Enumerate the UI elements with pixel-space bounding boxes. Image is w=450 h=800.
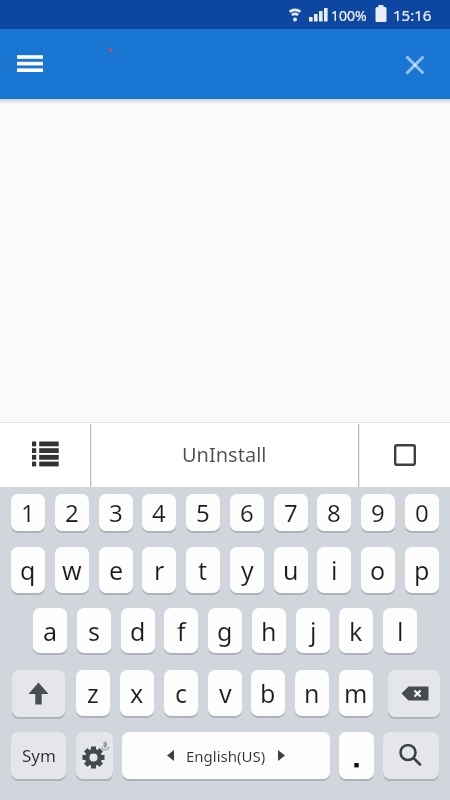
staticText: 7: [284, 496, 298, 529]
staticText: f: [177, 614, 186, 648]
staticText: 100%: [331, 6, 367, 25]
button[interactable]: [383, 732, 439, 779]
button[interactable]: 8: [317, 494, 351, 531]
staticText: 2: [65, 496, 79, 529]
button[interactable]: English(US): [122, 732, 330, 779]
button[interactable]: s: [77, 608, 111, 653]
staticText: e: [109, 553, 124, 587]
staticText: 4: [152, 496, 166, 529]
button[interactable]: m: [339, 670, 373, 716]
button[interactable]: 6: [230, 494, 264, 531]
staticText: 1: [21, 496, 35, 529]
button[interactable]: v: [208, 670, 242, 716]
button[interactable]: b: [251, 670, 285, 716]
button[interactable]: UnInstall: [91, 422, 358, 487]
button[interactable]: [339, 732, 374, 779]
button[interactable]: a: [33, 608, 67, 653]
staticText: h: [261, 614, 277, 648]
staticText: u: [283, 553, 299, 587]
button[interactable]: 9: [361, 494, 395, 531]
staticText: z: [87, 676, 99, 710]
staticText: j: [310, 614, 317, 648]
staticText: 3: [109, 496, 123, 529]
button[interactable]: r: [142, 547, 176, 593]
button[interactable]: u: [274, 547, 308, 593]
button[interactable]: y: [230, 547, 264, 593]
staticText: English(US): [186, 746, 266, 766]
staticText: y: [241, 553, 254, 587]
button[interactable]: o: [361, 547, 395, 593]
staticText: 15:16: [393, 5, 432, 25]
staticText: d: [130, 614, 146, 648]
button[interactable]: n: [295, 670, 329, 716]
staticText: UnInstall: [182, 441, 267, 468]
staticText: b: [260, 676, 276, 710]
staticText: k: [349, 614, 363, 648]
staticText: c: [175, 676, 188, 710]
button[interactable]: p: [405, 547, 439, 593]
staticText: w: [62, 553, 82, 587]
button[interactable]: t: [186, 547, 220, 593]
button[interactable]: [391, 41, 439, 89]
staticText: t: [198, 553, 208, 587]
staticText: 5: [196, 496, 210, 529]
button[interactable]: w: [55, 547, 89, 593]
button[interactable]: g: [208, 608, 242, 653]
button[interactable]: q: [11, 547, 45, 593]
button[interactable]: z: [76, 670, 110, 716]
staticText: 6: [240, 496, 254, 529]
staticText: s: [88, 614, 100, 648]
button[interactable]: 3: [99, 494, 133, 531]
staticText: r: [154, 553, 165, 587]
staticText: 9: [371, 496, 385, 529]
button[interactable]: 2: [55, 494, 89, 531]
button[interactable]: Sym: [11, 732, 66, 779]
button[interactable]: [359, 422, 450, 487]
staticText: v: [219, 676, 232, 710]
button[interactable]: 4: [142, 494, 176, 531]
staticText: q: [20, 553, 36, 587]
staticText: 0: [415, 496, 429, 529]
button[interactable]: i: [317, 547, 351, 593]
button[interactable]: h: [252, 608, 286, 653]
staticText: Sym: [22, 744, 56, 767]
button[interactable]: f: [164, 608, 198, 653]
button[interactable]: x: [120, 670, 154, 716]
button[interactable]: e: [99, 547, 133, 593]
button[interactable]: 5: [186, 494, 220, 531]
button[interactable]: j: [296, 608, 330, 653]
button[interactable]: [6, 41, 54, 89]
staticText: i: [331, 553, 338, 587]
button[interactable]: c: [164, 670, 198, 716]
button[interactable]: l: [383, 608, 417, 653]
staticText: 8: [327, 496, 341, 529]
button[interactable]: 0: [405, 494, 439, 531]
staticText: n: [304, 676, 320, 710]
button[interactable]: d: [121, 608, 155, 653]
staticText: g: [217, 614, 233, 648]
staticText: l: [397, 614, 404, 648]
button[interactable]: [0, 422, 90, 487]
staticText: o: [370, 553, 386, 587]
button[interactable]: 1: [11, 494, 45, 531]
button[interactable]: k: [339, 608, 373, 653]
button[interactable]: [12, 670, 65, 717]
button[interactable]: [76, 732, 113, 779]
staticText: p: [414, 553, 430, 587]
staticText: m: [344, 676, 368, 710]
staticText: a: [43, 614, 58, 648]
button[interactable]: [388, 670, 440, 717]
button[interactable]: 7: [274, 494, 308, 531]
staticText: x: [130, 676, 144, 710]
